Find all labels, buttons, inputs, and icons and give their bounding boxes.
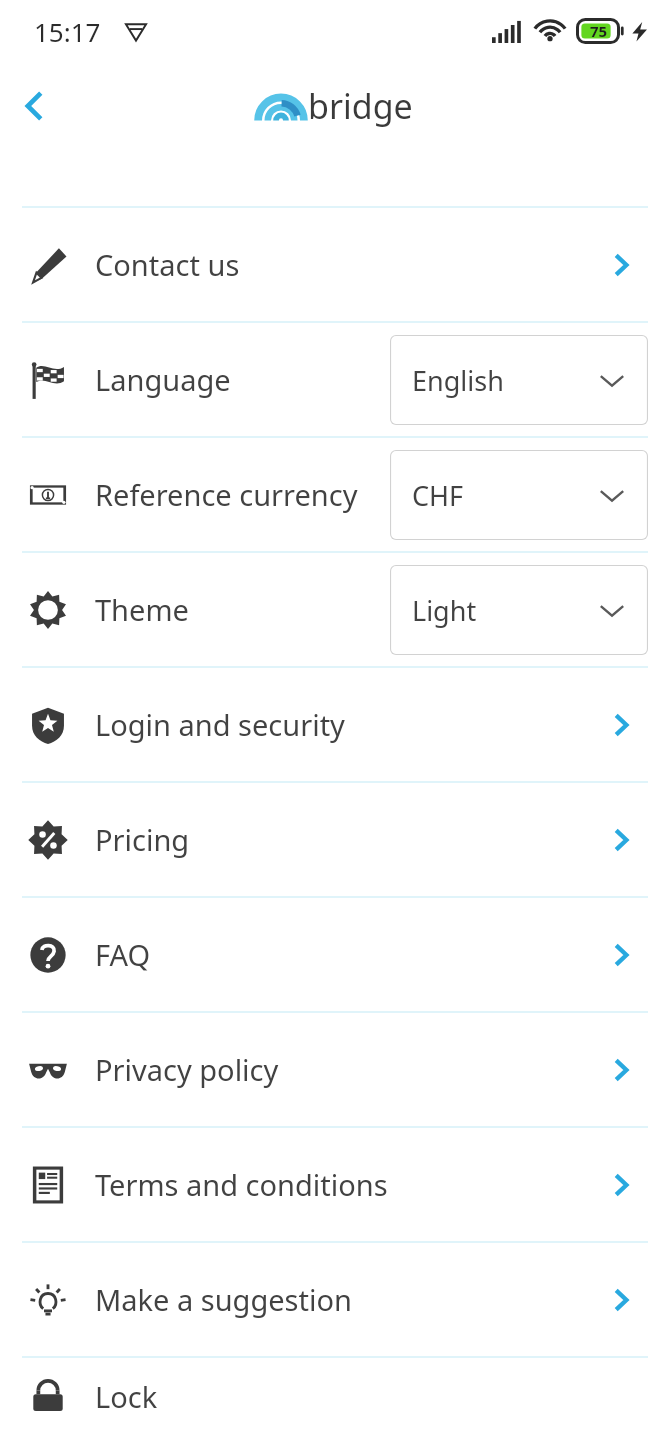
button[interactable]: Contact us (598, 242, 644, 288)
button[interactable]: Privacy policy (598, 1047, 644, 1093)
button[interactable]: Back (6, 77, 64, 135)
staticText: 15:17 (34, 14, 101, 49)
staticText: Make a suggestion (95, 1280, 598, 1319)
staticText: CHF (412, 477, 464, 514)
button[interactable]: Contact us (0, 208, 668, 321)
button[interactable]: Reference currency (0, 438, 668, 551)
button[interactable]: Theme (0, 553, 668, 666)
staticText: Terms and conditions (95, 1165, 598, 1204)
button[interactable]: Lock (0, 1358, 668, 1434)
button[interactable]: Login and security (598, 702, 644, 748)
button[interactable]: Make a suggestion (598, 1277, 644, 1323)
button[interactable]: English (390, 335, 648, 425)
staticText: Pricing (95, 820, 598, 859)
button[interactable]: Light (390, 565, 648, 655)
staticText: Reference currency (95, 475, 390, 514)
staticText: Light (412, 592, 477, 629)
staticText: Login and security (95, 705, 598, 744)
button[interactable]: Pricing (0, 783, 668, 896)
button[interactable]: Pricing (598, 817, 644, 863)
button[interactable]: FAQ (598, 932, 644, 978)
button[interactable]: CHF (390, 450, 648, 540)
button[interactable]: Terms and conditions (598, 1162, 644, 1208)
staticText: Language (95, 360, 390, 399)
button[interactable]: Privacy policy (0, 1013, 668, 1126)
button[interactable]: Make a suggestion (0, 1243, 668, 1356)
staticText: FAQ (95, 935, 598, 974)
button[interactable]: Terms and conditions (0, 1128, 668, 1241)
staticText: bridge (308, 83, 413, 129)
button[interactable]: Login and security (0, 668, 668, 781)
button[interactable]: Language (0, 323, 668, 436)
staticText: Theme (95, 590, 390, 629)
staticText: 75 (590, 21, 608, 41)
button[interactable]: FAQ (0, 898, 668, 1011)
staticText: Lock (95, 1377, 598, 1416)
staticText: English (412, 362, 504, 399)
staticText: Privacy policy (95, 1050, 598, 1089)
staticText: Contact us (95, 245, 598, 284)
